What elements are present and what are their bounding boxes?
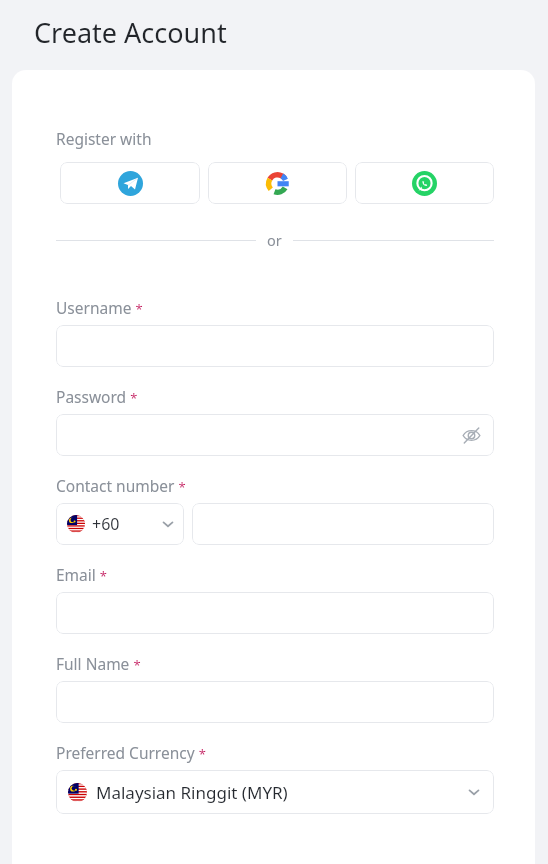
button[interactable] (56, 325, 494, 367)
button[interactable]: Register with Telegram (60, 162, 200, 204)
staticText: +60 (92, 513, 120, 535)
staticText: Username * (56, 297, 143, 318)
button[interactable] (56, 592, 494, 634)
button[interactable]: Register with WhatsApp (355, 162, 494, 204)
staticText: Email * (56, 564, 107, 585)
button[interactable]: Show password (56, 414, 494, 456)
button[interactable] (56, 681, 494, 723)
staticText: Password * (56, 386, 138, 407)
button[interactable] (192, 503, 494, 545)
staticText: Contact number * (56, 475, 186, 496)
staticText: Preferred Currency * (56, 742, 206, 763)
button[interactable]: Show password (458, 422, 484, 448)
staticText: or (267, 230, 282, 250)
staticText: Register with (56, 128, 152, 149)
button[interactable]: Malaysian Ringgit (MYR) (56, 770, 494, 814)
staticText: Full Name * (56, 653, 141, 674)
button[interactable]: +60 (56, 503, 184, 545)
staticText: Malaysian Ringgit (MYR) (96, 781, 288, 804)
staticText: Create Account (34, 14, 227, 51)
button[interactable]: Register with Google (208, 162, 347, 204)
